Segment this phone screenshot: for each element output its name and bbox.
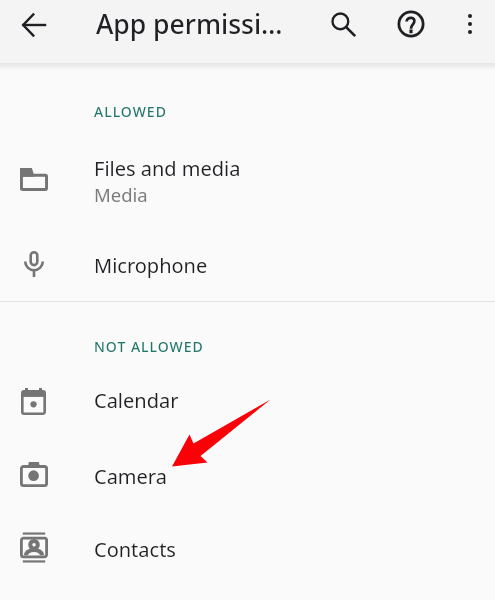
button[interactable]: Microphone	[0, 231, 495, 297]
staticText: Media	[94, 182, 148, 207]
button[interactable]: Contacts	[0, 514, 495, 580]
button[interactable]: More options	[446, 0, 494, 48]
button[interactable]: Calendar	[0, 368, 495, 434]
staticText: Calendar	[94, 387, 179, 414]
button[interactable]: Help	[387, 0, 435, 48]
button[interactable]: Files and media	[0, 146, 495, 212]
staticText: Contacts	[94, 536, 176, 563]
button[interactable]: ALLOWED	[94, 102, 167, 121]
staticText: App permissi…	[96, 6, 283, 42]
button[interactable]: Back	[10, 1, 57, 48]
staticText: Files and media	[94, 155, 241, 182]
button[interactable]: Search	[319, 0, 367, 48]
button[interactable]: NOT ALLOWED	[94, 337, 204, 356]
staticText: Microphone	[94, 252, 208, 279]
staticText: ALLOWED	[94, 102, 167, 121]
staticText: Camera	[94, 463, 167, 490]
button[interactable]: Camera	[0, 442, 495, 508]
staticText: NOT ALLOWED	[94, 337, 204, 356]
